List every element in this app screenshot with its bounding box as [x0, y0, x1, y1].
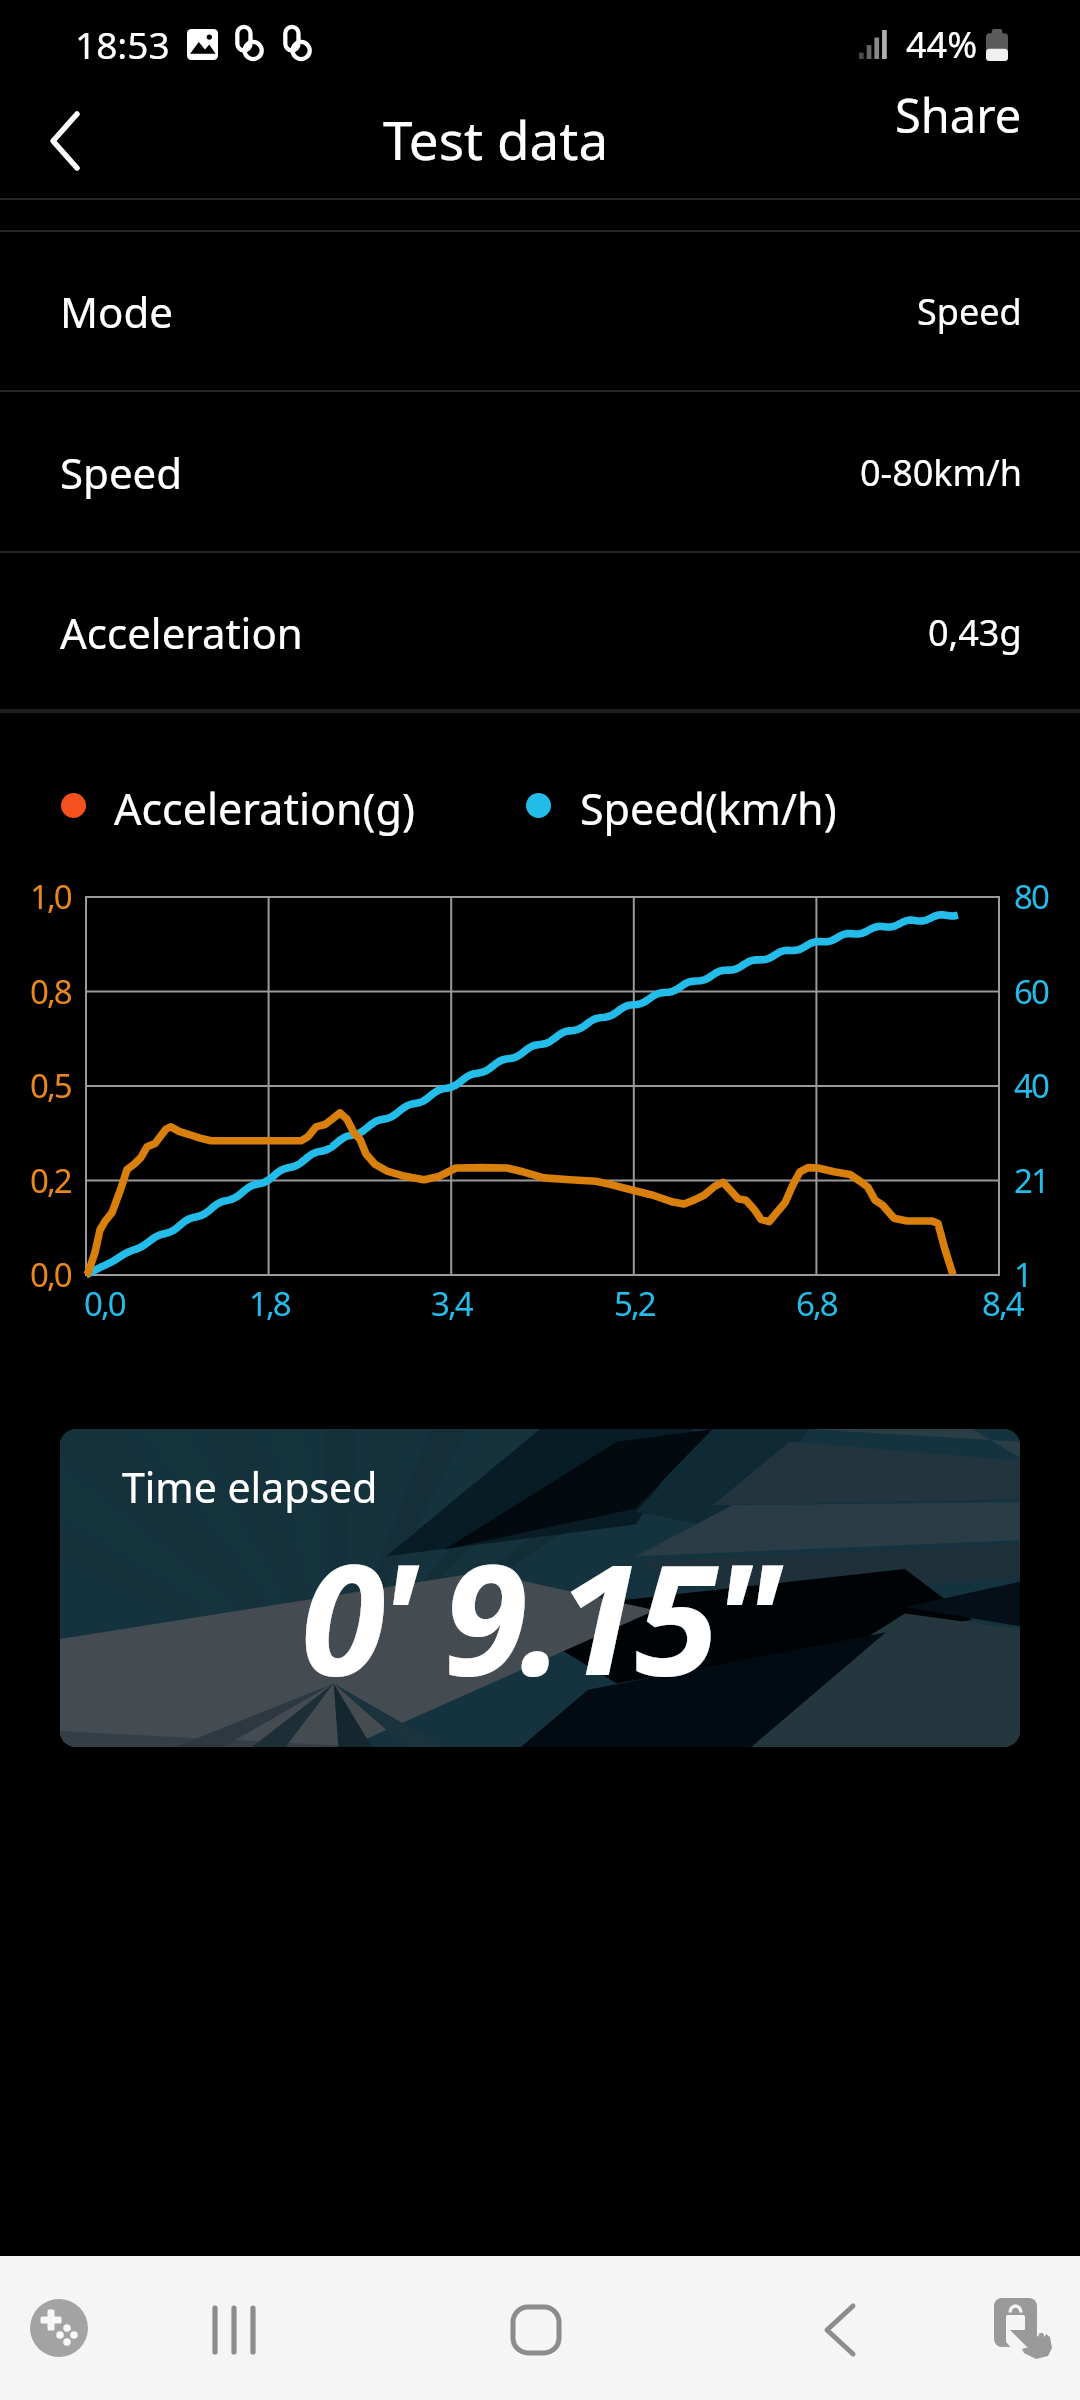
staticText: Mode [60, 283, 174, 340]
staticText: 44% [906, 20, 978, 69]
staticText: 6,8 [796, 1281, 837, 1326]
staticText: Share [895, 83, 1022, 147]
staticText: Speed [60, 444, 183, 501]
staticText: 3,4 [431, 1281, 472, 1326]
staticText: 0' 9.15" [301, 1511, 775, 1719]
staticText: 18:53 [75, 19, 170, 69]
button[interactable]: Speed [0, 392, 1080, 552]
button[interactable]: Game booster [30, 2299, 88, 2357]
button[interactable]: Acceleration [0, 553, 1080, 711]
staticText: Time elapsed [122, 1459, 378, 1515]
button[interactable]: Time elapsed [60, 1429, 1020, 1747]
staticText: Acceleration(g) [114, 779, 415, 838]
button[interactable]: Lock screen [986, 2295, 1066, 2375]
staticText: 80 [1014, 874, 1048, 919]
staticText: 0,2 [30, 1158, 71, 1203]
button[interactable]: Share [875, 101, 1080, 181]
staticText: Speed(km/h) [580, 779, 837, 838]
staticText: Test data [383, 103, 609, 175]
staticText: Speed [917, 287, 1022, 336]
staticText: 0,0 [30, 1252, 71, 1297]
staticText: 40 [1014, 1063, 1048, 1108]
staticText: 1,8 [249, 1281, 290, 1326]
staticText: Acceleration [60, 604, 303, 661]
staticText: 8,4 [982, 1281, 1023, 1326]
staticText: 0,5 [30, 1063, 71, 1108]
button[interactable]: Back [786, 2276, 894, 2384]
staticText: 0,43g [928, 608, 1022, 657]
staticText: 0,0 [84, 1281, 125, 1326]
button[interactable]: Home [482, 2276, 590, 2384]
staticText: 21 [1014, 1158, 1048, 1203]
staticText: 0-80km/h [860, 448, 1022, 497]
staticText: 0,8 [30, 969, 71, 1014]
staticText: 60 [1014, 969, 1048, 1014]
staticText: 1,0 [30, 874, 71, 919]
button[interactable]: Back [0, 86, 130, 196]
staticText: 1 [1014, 1252, 1031, 1297]
button[interactable]: Mode [0, 232, 1080, 391]
staticText: 5,2 [614, 1281, 655, 1326]
button[interactable]: Recents [180, 2276, 288, 2384]
